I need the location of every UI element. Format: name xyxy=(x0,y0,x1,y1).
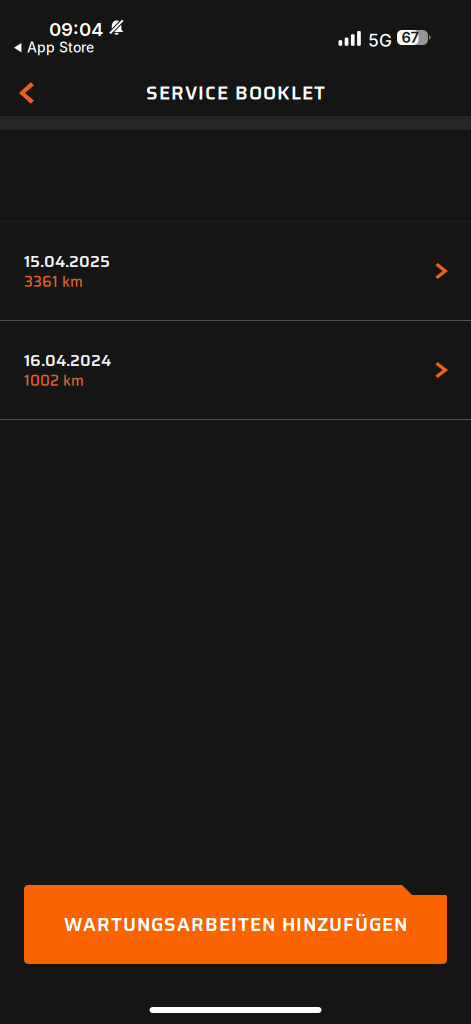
staticText: 1002 km xyxy=(24,369,84,392)
staticText: W A R T U N G S A R B E I T E N H I N Z … xyxy=(64,910,407,939)
staticText: 67 xyxy=(401,29,418,46)
button[interactable]: W A R T U N G S A R B E I T E N H I N Z … xyxy=(24,885,447,964)
button[interactable]: 15.04.2025 xyxy=(0,222,471,320)
staticText: App Store xyxy=(27,39,94,56)
staticText: 16.04.2024 xyxy=(24,348,111,373)
staticText: 09:04 xyxy=(49,18,103,41)
staticText: 3361 km xyxy=(24,270,83,293)
button[interactable]: 16.04.2024 xyxy=(0,321,471,419)
staticText: 15.04.2025 xyxy=(24,249,110,274)
button[interactable]: Back xyxy=(0,70,62,116)
staticText: S E R V I C E B O O K L E T xyxy=(146,78,325,108)
staticText: 5G xyxy=(368,30,392,51)
